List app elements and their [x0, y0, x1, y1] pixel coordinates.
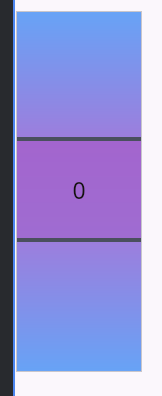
button[interactable]: 0 — [16, 11, 142, 372]
button[interactable] — [16, 242, 142, 372]
staticText: 0 — [72, 174, 86, 205]
button[interactable]: 0 — [16, 141, 142, 238]
button[interactable] — [16, 11, 142, 137]
